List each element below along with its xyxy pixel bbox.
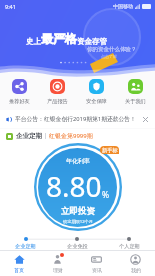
button[interactable]: 产品报告	[38, 77, 77, 109]
staticText: 最严格	[41, 31, 77, 46]
button[interactable]: 个人定期	[103, 233, 155, 250]
staticText: 企业免投	[67, 243, 88, 250]
staticText: 资金存管	[77, 37, 107, 46]
staticText: 你的资金什么体验？	[87, 46, 137, 53]
staticText: 8.80	[46, 167, 102, 205]
button[interactable]: 企业免投	[51, 233, 103, 250]
staticText: %	[102, 189, 110, 201]
staticText: 年化利率	[66, 157, 90, 165]
button[interactable]: Close notice	[141, 115, 150, 124]
staticText: 9:41	[5, 3, 16, 10]
staticText: 关于我们	[125, 98, 146, 105]
staticText: 新手标	[102, 147, 118, 154]
staticText: 中国移动	[113, 3, 133, 9]
button[interactable]: 首页	[0, 251, 38, 276]
staticText: 产品报告	[47, 98, 68, 105]
button[interactable]: 安全保障	[77, 77, 116, 109]
button[interactable]: 我的	[116, 251, 155, 276]
staticText: 安全保障	[86, 98, 107, 105]
staticText: 资讯	[92, 267, 102, 273]
staticText: 企业定期	[16, 132, 42, 140]
button[interactable]: 企业定期	[0, 129, 155, 143]
staticText: 理财	[53, 267, 63, 273]
staticText: 锁定期限12个月	[63, 219, 93, 225]
staticText: 个人定期	[119, 243, 140, 250]
staticText: 首页	[14, 267, 24, 273]
staticText: 推荐好友	[9, 98, 30, 105]
button[interactable]: 理财	[38, 251, 77, 276]
button[interactable]: 年化利率	[38, 148, 117, 227]
staticText: 点击了解	[101, 54, 117, 59]
staticText: 企业定期	[15, 243, 36, 250]
button[interactable]: 资讯	[77, 251, 116, 276]
button[interactable]: 关于我们	[116, 77, 155, 109]
button[interactable]: 企业定期	[0, 233, 51, 250]
staticText: 我的	[131, 267, 141, 273]
staticText: 史上	[26, 37, 41, 46]
button[interactable]: 推荐好友	[0, 77, 38, 109]
staticText: 平台公告：红银金创行2019期第1期还款公告！	[15, 115, 136, 123]
staticText: 立即投资	[61, 206, 95, 217]
staticText: 红银金第9999期	[49, 132, 93, 140]
